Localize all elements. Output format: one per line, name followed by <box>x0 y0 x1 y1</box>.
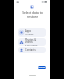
staticText: Photos & videos <box>25 38 44 44</box>
button[interactable]: Restore <box>38 66 46 69</box>
button[interactable]: Contacts <box>18 47 46 53</box>
staticText: Select data to restore <box>22 11 43 19</box>
button[interactable]: Apps <box>18 28 46 37</box>
staticText: 2,481 items <box>25 44 38 46</box>
button[interactable]: Photos & videos <box>18 38 46 46</box>
staticText: Apps <box>25 29 32 33</box>
staticText: Contacts <box>25 48 36 52</box>
staticText: 18 apps <box>25 33 34 36</box>
staticText: Restore <box>38 66 46 69</box>
